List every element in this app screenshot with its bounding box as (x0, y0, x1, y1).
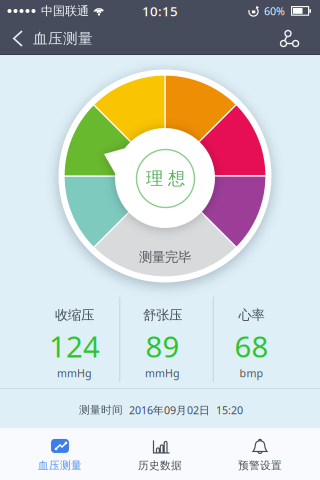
staticText: 预警设置 (238, 459, 282, 472)
staticText: 血压测量 (33, 29, 93, 47)
button[interactable] (1, 21, 35, 55)
button[interactable]: 血压测量 (10, 428, 110, 480)
staticText: 历史数据 (138, 459, 182, 472)
button[interactable]: 历史数据 (110, 428, 210, 480)
staticText: 血压测量 (38, 459, 82, 472)
staticText: 心率 (238, 307, 264, 323)
staticText: mmHg (145, 366, 180, 380)
staticText: 124 (49, 326, 100, 365)
staticText: 舒张压 (143, 307, 182, 323)
staticText: 理 想 (146, 168, 185, 189)
staticText: 89 (145, 326, 179, 365)
staticText: bmp (239, 366, 263, 380)
staticText: 2016年09月02日 (129, 403, 210, 417)
staticText: 10:15 (142, 2, 178, 20)
staticText: mmHg (57, 366, 92, 380)
staticText: 测量时间 (79, 403, 123, 416)
staticText: 15:20 (216, 403, 243, 417)
staticText: 60% (264, 4, 285, 18)
staticText: 测量完毕 (139, 249, 191, 265)
staticText: 68 (234, 326, 268, 365)
staticText: 中国联通 (41, 4, 89, 18)
button[interactable] (276, 25, 302, 51)
staticText: 收缩压 (55, 307, 94, 323)
button[interactable]: 预警设置 (210, 428, 310, 480)
